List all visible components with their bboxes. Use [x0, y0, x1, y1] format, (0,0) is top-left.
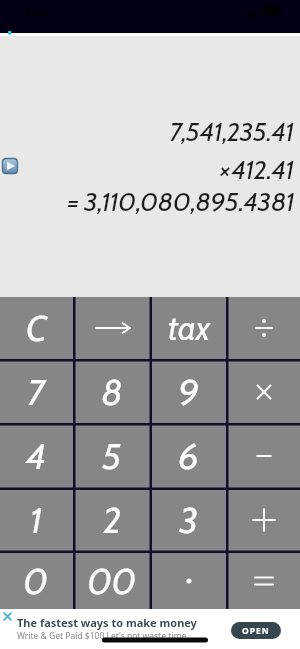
button[interactable]: 3: [152, 490, 226, 550]
staticText: 1: [31, 498, 43, 542]
staticText: 7,541,235.41: [170, 116, 295, 148]
staticText: 8: [102, 370, 124, 414]
button[interactable]: 2: [76, 490, 149, 550]
staticText: Write & Get Paid $100 Let's not waste ti…: [17, 630, 187, 642]
button[interactable]: [228, 297, 300, 359]
staticText: tax: [168, 308, 211, 348]
staticText: 5: [103, 434, 122, 478]
button[interactable]: tax: [152, 297, 226, 359]
button[interactable]: 5: [76, 425, 149, 487]
staticText: OPEN: [242, 625, 270, 637]
staticText: 1:00: [24, 4, 48, 20]
staticText: C: [26, 306, 47, 350]
staticText: ×412.41: [220, 154, 295, 186]
button[interactable]: 00: [76, 553, 149, 609]
staticText: = 3,110,080,895.4381: [68, 186, 295, 218]
button[interactable]: 7: [0, 361, 73, 423]
staticText: 9: [179, 370, 200, 414]
button[interactable]: C: [0, 297, 73, 359]
button[interactable]: [228, 490, 300, 550]
staticText: 2: [104, 498, 122, 542]
staticText: 00: [88, 559, 137, 603]
staticText: 7: [28, 370, 46, 414]
button[interactable]: 1: [0, 490, 73, 550]
button[interactable]: [152, 553, 226, 609]
button[interactable]: [2, 611, 14, 623]
button[interactable]: [76, 297, 149, 359]
button[interactable]: [228, 425, 300, 487]
staticText: 4: [26, 434, 47, 478]
staticText: 3: [180, 498, 199, 542]
button[interactable]: The fastest ways to make money: [0, 609, 300, 649]
staticText: 6: [179, 434, 199, 478]
staticText: 0: [24, 559, 49, 603]
staticText: The fastest ways to make money: [17, 615, 197, 630]
button[interactable]: 8: [76, 361, 149, 423]
button[interactable]: 0: [0, 553, 73, 609]
button[interactable]: [228, 553, 300, 609]
button[interactable]: [228, 361, 300, 423]
button[interactable]: [2, 158, 18, 174]
button[interactable]: 6: [152, 425, 226, 487]
button[interactable]: 4: [0, 425, 73, 487]
button[interactable]: 9: [152, 361, 226, 423]
button[interactable]: OPEN: [231, 622, 281, 639]
